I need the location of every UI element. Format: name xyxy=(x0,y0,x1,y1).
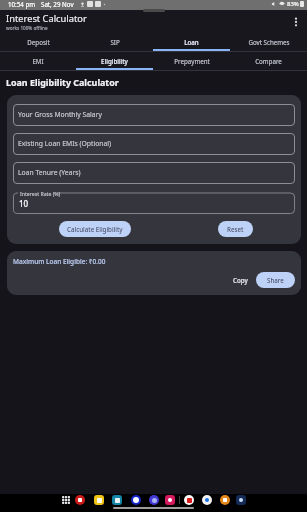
staticText: Copy xyxy=(233,276,248,284)
button[interactable]: Loan xyxy=(153,33,230,51)
staticText: Your Gross Monthly Salary xyxy=(18,110,102,119)
staticText: Existing Loan EMIs (Optional) xyxy=(18,139,112,148)
staticText: Loan Tenure (Years) xyxy=(18,168,81,177)
button[interactable]: Loan Tenure (Years) xyxy=(13,162,295,184)
button[interactable]: Compare xyxy=(230,52,307,70)
button[interactable]: Apps xyxy=(61,495,70,504)
button[interactable]: Calculate Eligibility xyxy=(59,221,131,237)
staticText: works 100% offline xyxy=(6,25,48,31)
staticText: 10:54 pm xyxy=(8,0,36,8)
button[interactable]: Camera xyxy=(165,495,175,505)
button[interactable]: Share xyxy=(256,272,295,288)
button[interactable]: Settings xyxy=(236,495,246,505)
staticText: 10 xyxy=(19,198,29,209)
staticText: EMI xyxy=(32,57,44,65)
staticText: 83% xyxy=(287,0,299,8)
button[interactable]: More options xyxy=(288,14,304,30)
staticText: Govt Schemes xyxy=(248,38,290,46)
button[interactable]: SIP xyxy=(76,33,153,51)
button[interactable]: Eligibility xyxy=(76,52,153,70)
button[interactable]: Chrome xyxy=(202,495,212,505)
button[interactable]: Deposit xyxy=(0,33,76,51)
staticText: SIP xyxy=(110,38,120,46)
staticText: Share xyxy=(267,276,284,284)
staticText: Maximum Loan Eligible: ₹0.00 xyxy=(13,257,106,266)
staticText: Compare xyxy=(255,57,282,65)
button[interactable]: Gallery xyxy=(75,495,85,505)
button[interactable]: Existing Loan EMIs (Optional) xyxy=(13,133,295,155)
button[interactable]: Prepayment xyxy=(153,52,230,70)
button[interactable]: Files xyxy=(94,495,104,505)
button[interactable]: Messages xyxy=(131,495,141,505)
staticText: Loan Eligibility Calculator xyxy=(6,76,119,88)
staticText: Interest Rate (%) xyxy=(20,190,61,197)
staticText: Eligibility xyxy=(101,57,128,65)
button[interactable]: Calendar xyxy=(112,495,122,505)
staticText: Calculate Eligibility xyxy=(67,225,123,233)
staticText: Deposit xyxy=(27,38,50,46)
staticText: Loan xyxy=(184,38,199,46)
button[interactable]: Reset xyxy=(218,221,253,237)
button[interactable]: Your Gross Monthly Salary xyxy=(13,104,295,126)
staticText: Prepayment xyxy=(174,57,210,65)
button[interactable]: Interest Rate (%) xyxy=(13,190,295,214)
button[interactable]: Browser xyxy=(149,495,159,505)
button[interactable]: Govt Schemes xyxy=(230,33,307,51)
staticText: Reset xyxy=(227,225,244,233)
button[interactable]: EMI xyxy=(0,52,76,70)
staticText: Interest Calculator xyxy=(6,12,87,25)
staticText: Sat, 29 Nov xyxy=(41,0,74,8)
button[interactable]: Copy xyxy=(228,273,253,287)
button[interactable]: YouTube xyxy=(184,495,194,505)
button[interactable]: Mail xyxy=(220,495,230,505)
